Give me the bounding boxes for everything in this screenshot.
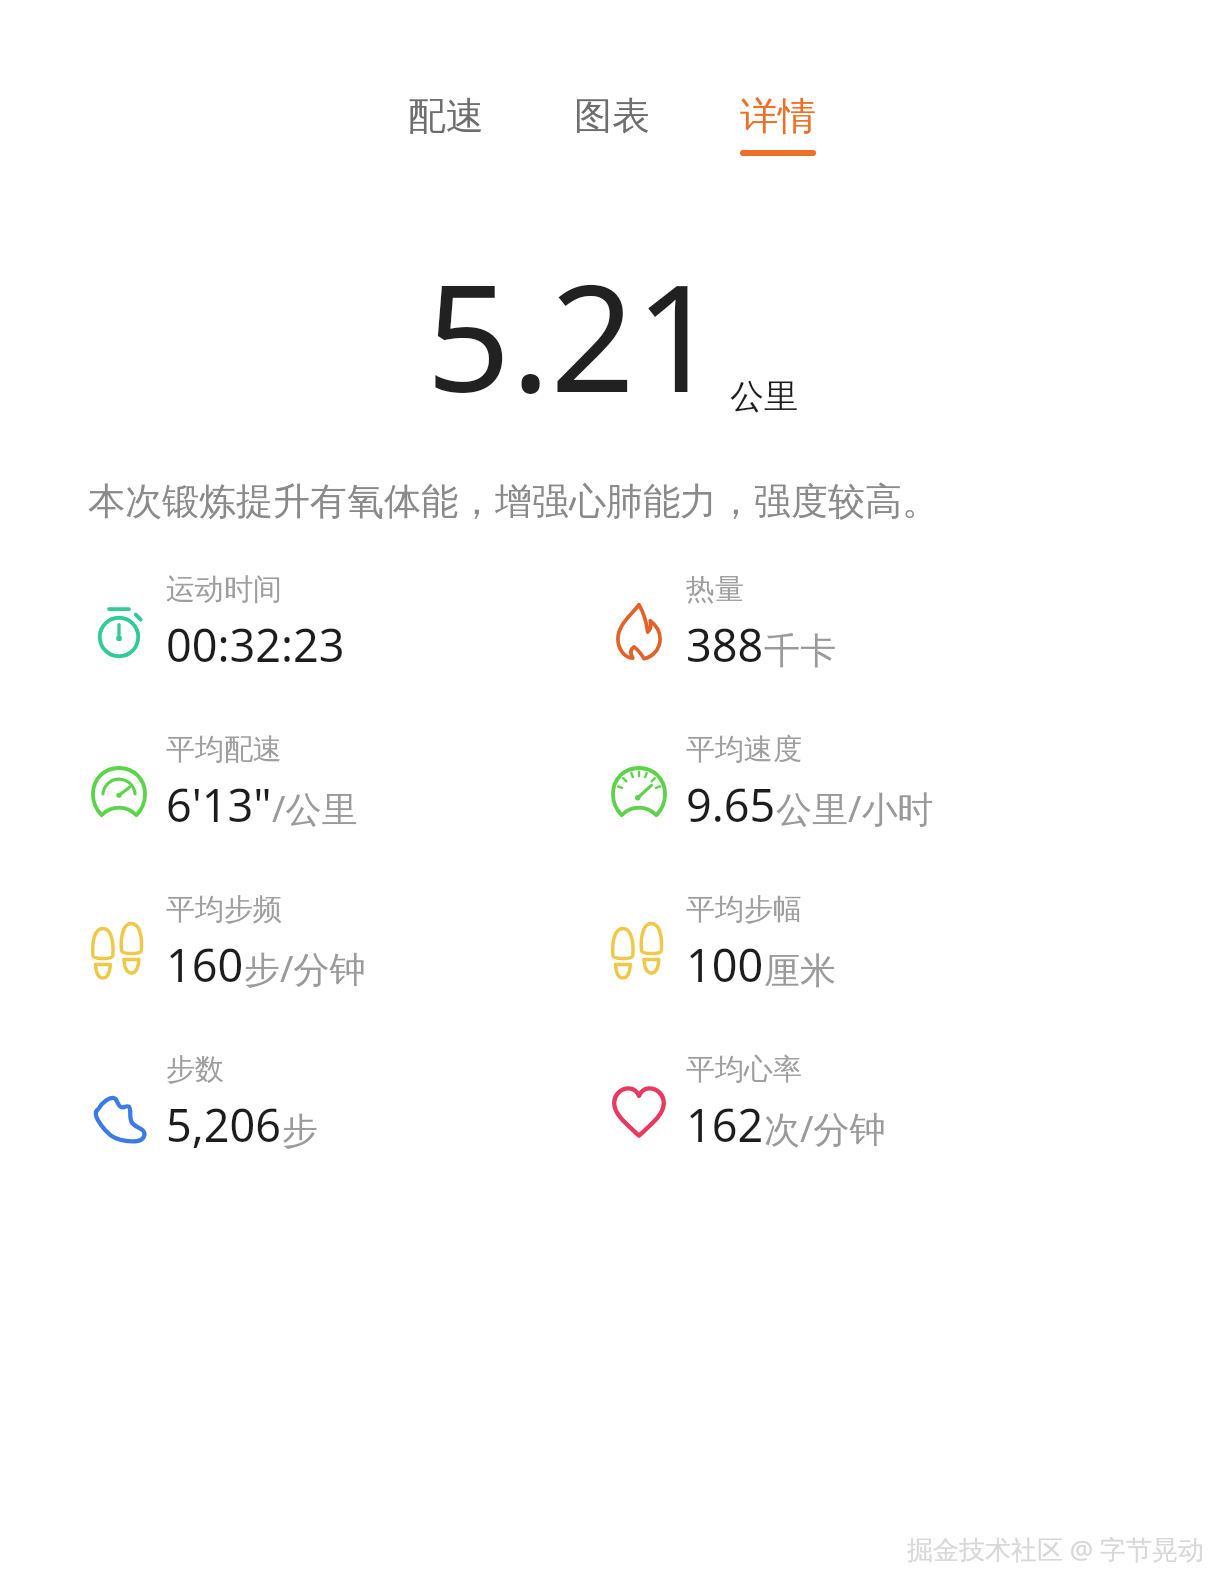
staticText: 00:32:23 (166, 614, 345, 675)
button[interactable]: 平均配速 (88, 731, 608, 835)
staticText: 5,206 (166, 1094, 282, 1155)
staticText: 掘金技术社区 @ 字节晃动 (907, 1531, 1204, 1567)
staticText: 热量 (686, 571, 744, 608)
button[interactable]: 热量 (608, 571, 1128, 675)
staticText: 162 (686, 1094, 764, 1155)
staticText: 平均心率 (686, 1051, 802, 1088)
staticText: 9.65 (686, 774, 776, 835)
button[interactable]: 图表 (558, 86, 666, 162)
staticText: 平均步幅 (686, 891, 802, 928)
staticText: 平均配速 (166, 731, 282, 768)
staticText: 步 (282, 1108, 318, 1153)
staticText: 详情 (740, 92, 816, 140)
staticText: 步/分钟 (244, 944, 366, 993)
staticText: 运动时间 (166, 571, 282, 608)
staticText: 本次锻炼提升有氧体能，增强心肺能力，强度较高。 (88, 478, 939, 525)
staticText: 千卡 (764, 628, 836, 673)
button[interactable]: 配速 (392, 86, 500, 162)
staticText: 图表 (574, 92, 650, 140)
staticText: /公里 (272, 784, 358, 833)
button[interactable]: 运动时间 (88, 571, 608, 675)
button[interactable]: 平均步频 (88, 891, 608, 995)
staticText: 步数 (166, 1051, 224, 1088)
staticText: 配速 (408, 92, 484, 140)
staticText: 160 (166, 934, 244, 995)
button[interactable]: 平均速度 (608, 731, 1128, 835)
staticText: 次/分钟 (764, 1104, 886, 1153)
staticText: 平均步频 (166, 891, 282, 928)
button[interactable]: 详情 (724, 86, 832, 162)
button[interactable]: 平均步幅 (608, 891, 1128, 995)
button[interactable]: 步数 (88, 1051, 608, 1155)
staticText: 公里/小时 (776, 784, 934, 833)
staticText: 5.21 (426, 234, 720, 436)
staticText: 厘米 (764, 948, 836, 993)
staticText: 公里 (730, 375, 798, 418)
staticText: 6'13" (166, 774, 272, 835)
staticText: 388 (686, 614, 764, 675)
staticText: 100 (686, 934, 764, 995)
staticText: 平均速度 (686, 731, 802, 768)
button[interactable]: 平均心率 (608, 1051, 1128, 1155)
